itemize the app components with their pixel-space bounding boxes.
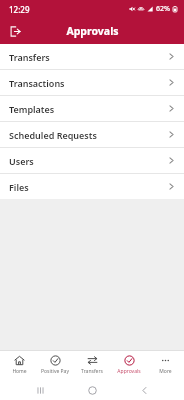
staticText: Transfers <box>9 51 168 63</box>
staticText: Home <box>12 368 27 375</box>
button[interactable]: Back <box>132 380 156 400</box>
staticText: Users <box>9 155 168 167</box>
button[interactable]: Approvals <box>111 350 147 380</box>
button[interactable]: Home <box>1 350 37 380</box>
staticText: Files <box>9 181 168 193</box>
button[interactable]: Log out <box>4 20 26 42</box>
staticText: Templates <box>9 103 168 115</box>
staticText: Approvals <box>66 24 119 38</box>
button[interactable]: Transfers <box>74 350 110 380</box>
button[interactable]: Files <box>0 174 184 199</box>
staticText: Transfers <box>81 368 103 375</box>
button[interactable]: Transfers <box>0 44 184 69</box>
button[interactable]: Scheduled Requests <box>0 122 184 147</box>
button[interactable]: Recent apps <box>28 380 52 400</box>
button[interactable]: Transactions <box>0 70 184 95</box>
staticText: 12:29 <box>9 4 30 15</box>
button[interactable]: Users <box>0 148 184 173</box>
button[interactable]: Templates <box>0 96 184 121</box>
button[interactable]: Positive Pay <box>37 350 73 380</box>
button[interactable]: Home <box>80 380 104 400</box>
staticText: Scheduled Requests <box>9 129 168 141</box>
staticText: More <box>159 368 172 375</box>
button[interactable]: More <box>147 350 183 380</box>
staticText: Positive Pay <box>41 368 69 375</box>
staticText: 62% <box>156 4 170 14</box>
staticText: Transactions <box>9 77 168 89</box>
staticText: Approvals <box>117 368 141 375</box>
